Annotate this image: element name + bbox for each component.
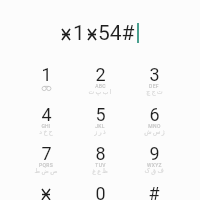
staticText: 1 <box>73 21 85 46</box>
staticText: MNO <box>148 123 161 129</box>
button[interactable]: 4 <box>19 104 73 144</box>
staticText: ف ق ک <box>144 167 164 174</box>
button[interactable]: 7 <box>19 143 73 183</box>
staticText: 2 <box>95 64 106 85</box>
button[interactable]: 5 <box>73 104 127 144</box>
staticText: 5 <box>95 104 106 125</box>
staticText: JKL <box>95 123 105 129</box>
staticText: 7 <box>41 143 52 164</box>
button[interactable]: 3 <box>127 64 181 104</box>
staticText: 0 <box>95 183 106 200</box>
button[interactable]: Dialed number <box>0 0 200 66</box>
staticText: ذ ر ز <box>94 128 106 135</box>
staticText: 6 <box>149 104 160 125</box>
staticText: 1 <box>41 64 52 85</box>
button[interactable]: 0 <box>73 183 127 200</box>
staticText: PQRS <box>39 162 53 168</box>
staticText: 9 <box>149 143 160 164</box>
staticText: ا ب پ ت <box>88 88 112 95</box>
button[interactable]: 1 <box>19 64 73 104</box>
staticText: GHI <box>41 123 51 129</box>
staticText: DEF <box>149 83 159 89</box>
staticText: ث ج چ <box>146 88 163 95</box>
button[interactable]: 2 <box>73 64 127 104</box>
staticText: ظ ع غ <box>92 167 108 174</box>
staticText: 8 <box>95 143 106 164</box>
staticText: TUV <box>95 162 106 168</box>
staticText: # <box>148 183 160 200</box>
button[interactable]: star <box>19 183 73 200</box>
staticText: 54# <box>98 21 135 46</box>
staticText: ژ س ش <box>144 128 165 135</box>
staticText: WXYZ <box>147 162 162 168</box>
staticText: ص ض ط <box>34 167 58 174</box>
staticText: 3 <box>149 64 160 85</box>
button[interactable]: 6 <box>127 104 181 144</box>
button[interactable]: 9 <box>127 143 181 183</box>
staticText: 4 <box>41 104 52 125</box>
staticText: ABC <box>95 83 106 89</box>
staticText: ح خ د <box>39 128 53 135</box>
button[interactable]: pound <box>127 183 181 200</box>
button[interactable]: 8 <box>73 143 127 183</box>
